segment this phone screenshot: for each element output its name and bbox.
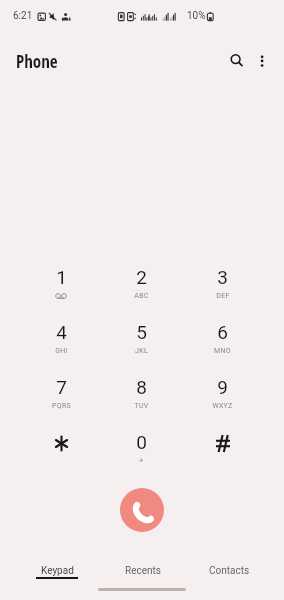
staticText: DEF [216,292,230,300]
button[interactable]: More options [250,48,274,72]
button[interactable]: 9 [182,372,263,427]
staticText: TUV [134,402,149,410]
staticText: Phone [16,50,58,73]
button[interactable]: 2 [101,262,182,317]
staticText: ABC [134,292,149,300]
button[interactable]: Search [224,48,248,72]
staticText: Recents [125,565,161,577]
button[interactable]: 7 [21,372,101,427]
staticText: WXYZ [212,402,233,410]
staticText: MNO [214,347,231,355]
staticText: 4 [56,321,67,343]
button[interactable]: Recents [100,565,186,587]
button[interactable]: Keypad [14,565,100,587]
staticText: 5 [136,321,147,343]
staticText: 3 [217,266,228,288]
button[interactable]: Call [120,488,164,532]
staticText: Contacts [209,565,250,577]
staticText: 6 [217,321,228,343]
staticText: 0 [136,431,147,453]
button[interactable]: 4 [21,317,101,372]
button[interactable]: 3 [182,262,263,317]
button[interactable]: 0 [101,427,182,482]
staticText: 8 [136,376,147,398]
button[interactable]: 1 [21,262,101,317]
button[interactable]: 6 [182,317,263,372]
button[interactable]: 8 [101,372,182,427]
button[interactable] [21,427,101,482]
staticText: 7 [56,376,67,398]
staticText: GHI [55,347,68,355]
staticText: Keypad [41,565,74,577]
staticText: JKL [135,347,148,355]
button[interactable] [182,427,263,482]
staticText: PQRS [52,402,71,410]
staticText: 1 [56,266,67,288]
button[interactable]: 5 [101,317,182,372]
staticText: + [139,457,144,465]
staticText: 9 [217,376,228,398]
staticText: 2 [136,266,147,288]
button[interactable]: Contacts [186,565,272,587]
staticText: 10% [187,10,206,22]
staticText: 6:21 [13,10,33,22]
